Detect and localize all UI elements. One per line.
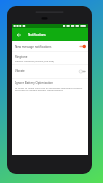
button[interactable]: Back <box>15 31 23 39</box>
button[interactable]: New message notifications <box>12 42 88 51</box>
staticText: In order to make sure that all messages … <box>15 86 86 92</box>
staticText: Vibrate <box>15 69 79 73</box>
button[interactable]: Ringtone <box>12 52 88 65</box>
button[interactable]: Toggle on <box>79 44 86 49</box>
staticText: Default ringtone (Skyline_pre.ogg) <box>15 59 55 62</box>
staticText: Notifications <box>28 33 46 37</box>
staticText: Ignore Battery Optimization <box>15 81 54 85</box>
staticText: New message notifications <box>15 45 79 49</box>
button[interactable]: Ignore Battery Optimization <box>12 78 88 95</box>
button[interactable]: Toggle off <box>79 69 86 74</box>
button[interactable]: Vibrate <box>12 64 88 78</box>
staticText: Ringtone <box>15 55 28 59</box>
